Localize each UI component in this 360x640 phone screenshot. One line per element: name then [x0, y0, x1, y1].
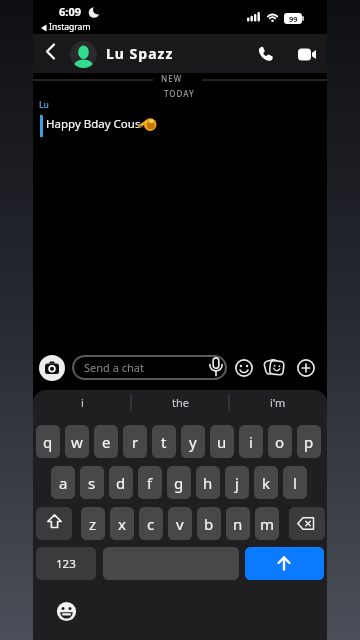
- staticText: p: [304, 432, 314, 452]
- staticText: a: [59, 473, 68, 493]
- staticText: the: [172, 395, 189, 410]
- staticText: Happy Bday Cous: [46, 116, 141, 132]
- staticText: w: [71, 432, 83, 452]
- staticText: m: [260, 514, 275, 534]
- staticText: g: [174, 473, 184, 493]
- staticText: i: [249, 432, 253, 452]
- staticText: b: [204, 514, 214, 534]
- staticText: n: [233, 514, 243, 534]
- staticText: TODAY: [164, 88, 195, 99]
- staticText: u: [217, 432, 227, 452]
- staticText: e: [102, 432, 111, 452]
- staticText: y: [189, 432, 197, 452]
- staticText: r: [132, 432, 139, 452]
- staticText: Instagram: [49, 21, 91, 33]
- staticText: Send a chat: [84, 360, 144, 375]
- staticText: j: [235, 473, 239, 493]
- staticText: t: [161, 432, 167, 452]
- staticText: h: [203, 473, 213, 493]
- staticText: z: [89, 514, 97, 534]
- staticText: k: [262, 473, 271, 493]
- staticText: i'm: [270, 395, 286, 410]
- staticText: 6:09: [59, 4, 81, 19]
- staticText: o: [275, 432, 285, 452]
- staticText: d: [116, 473, 126, 493]
- staticText: l: [293, 473, 297, 493]
- staticText: x: [118, 514, 126, 534]
- staticText: s: [88, 473, 96, 493]
- staticText: 99: [289, 14, 298, 24]
- staticText: 123: [56, 556, 76, 572]
- staticText: i: [81, 395, 84, 410]
- staticText: c: [147, 514, 155, 534]
- staticText: v: [176, 514, 184, 534]
- staticText: NEW: [161, 73, 183, 84]
- staticText: q: [43, 432, 53, 452]
- staticText: f: [147, 473, 153, 493]
- staticText: Lu: [39, 99, 49, 111]
- staticText: Lu Spazz: [106, 44, 174, 63]
